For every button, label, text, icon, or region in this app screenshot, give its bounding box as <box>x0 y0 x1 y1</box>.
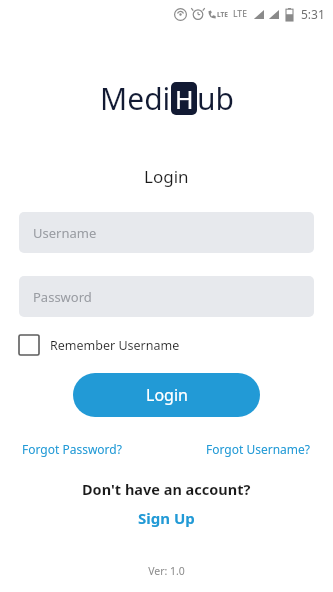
staticText: H <box>175 82 194 115</box>
staticText: 5:31 <box>301 6 325 22</box>
staticText: Don't have an account? <box>82 479 251 499</box>
staticText: Forgot Username? <box>206 441 311 457</box>
staticText: ub <box>197 78 234 119</box>
staticText: Password <box>33 288 92 306</box>
button[interactable]: Forgot Password? <box>22 441 122 457</box>
button[interactable]: Forgot Username? <box>206 441 311 457</box>
button[interactable]: Remember Username <box>19 335 180 355</box>
staticText: Ver: 1.0 <box>148 564 185 578</box>
button[interactable]: Sign Up <box>138 508 195 528</box>
staticText: LTE <box>217 10 228 19</box>
button[interactable]: Username <box>19 212 314 253</box>
staticText: Medi <box>100 78 171 119</box>
button[interactable]: Login <box>73 373 260 417</box>
staticText: Login <box>146 384 188 406</box>
staticText: Login <box>144 165 189 188</box>
button[interactable]: Password <box>19 276 314 317</box>
staticText: Forgot Password? <box>22 441 122 457</box>
staticText: Remember Username <box>50 337 180 354</box>
staticText: Sign Up <box>138 508 195 528</box>
staticText: LTE <box>233 8 247 20</box>
staticText: Username <box>33 224 97 242</box>
